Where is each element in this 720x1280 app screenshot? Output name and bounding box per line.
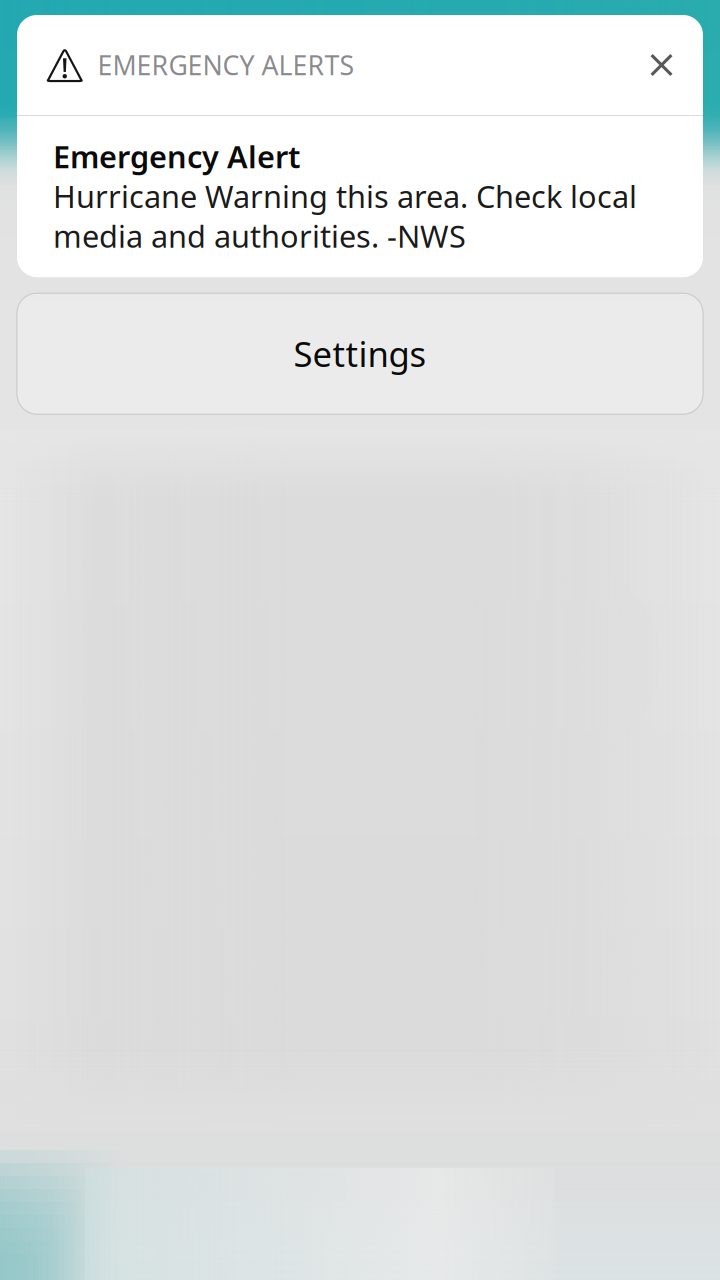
staticText: Settings <box>293 331 426 377</box>
button[interactable]: Dismiss alert <box>632 35 692 95</box>
button[interactable]: Settings <box>17 293 703 414</box>
staticText: Emergency Alert <box>53 136 300 177</box>
staticText: EMERGENCY ALERTS <box>97 47 354 83</box>
staticText: Hurricane Warning this area. Check local <box>53 176 637 216</box>
staticText: media and authorities. -NWS <box>53 215 466 256</box>
button[interactable]: Emergency Alert <box>17 116 703 277</box>
